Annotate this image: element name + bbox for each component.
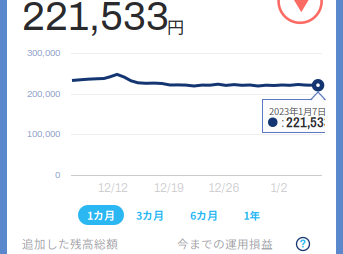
staticText: 3カ月 [136, 207, 164, 223]
staticText: 円 [167, 14, 184, 39]
staticText: 12/12 [98, 181, 128, 195]
staticText: 300,000 [27, 48, 60, 58]
staticText: 221,533 [22, 0, 169, 38]
staticText: 200,000 [27, 89, 60, 99]
staticText: 12/19 [154, 181, 184, 195]
staticText: 100,000 [27, 129, 60, 139]
button[interactable]: Help [295, 236, 311, 252]
button[interactable]: 3カ月 [130, 205, 170, 225]
staticText: 今までの運用損益 [177, 235, 273, 252]
staticText: 0 [55, 170, 60, 180]
staticText: 221,533 [286, 112, 331, 132]
button[interactable]: 1カ月 [78, 205, 124, 225]
staticText: 2023年1月7日 [269, 104, 326, 118]
staticText: 1カ月 [87, 207, 115, 223]
staticText: 6カ月 [190, 207, 218, 223]
staticText: ? [299, 238, 306, 250]
button[interactable]: 1年 [232, 205, 272, 225]
staticText: 1/2 [270, 181, 287, 195]
staticText: : [281, 116, 285, 130]
staticText: 1年 [243, 207, 260, 223]
staticText: 追加した残高総額 [22, 235, 118, 252]
button[interactable]: 6カ月 [184, 205, 224, 225]
staticText: 12/26 [208, 181, 239, 195]
